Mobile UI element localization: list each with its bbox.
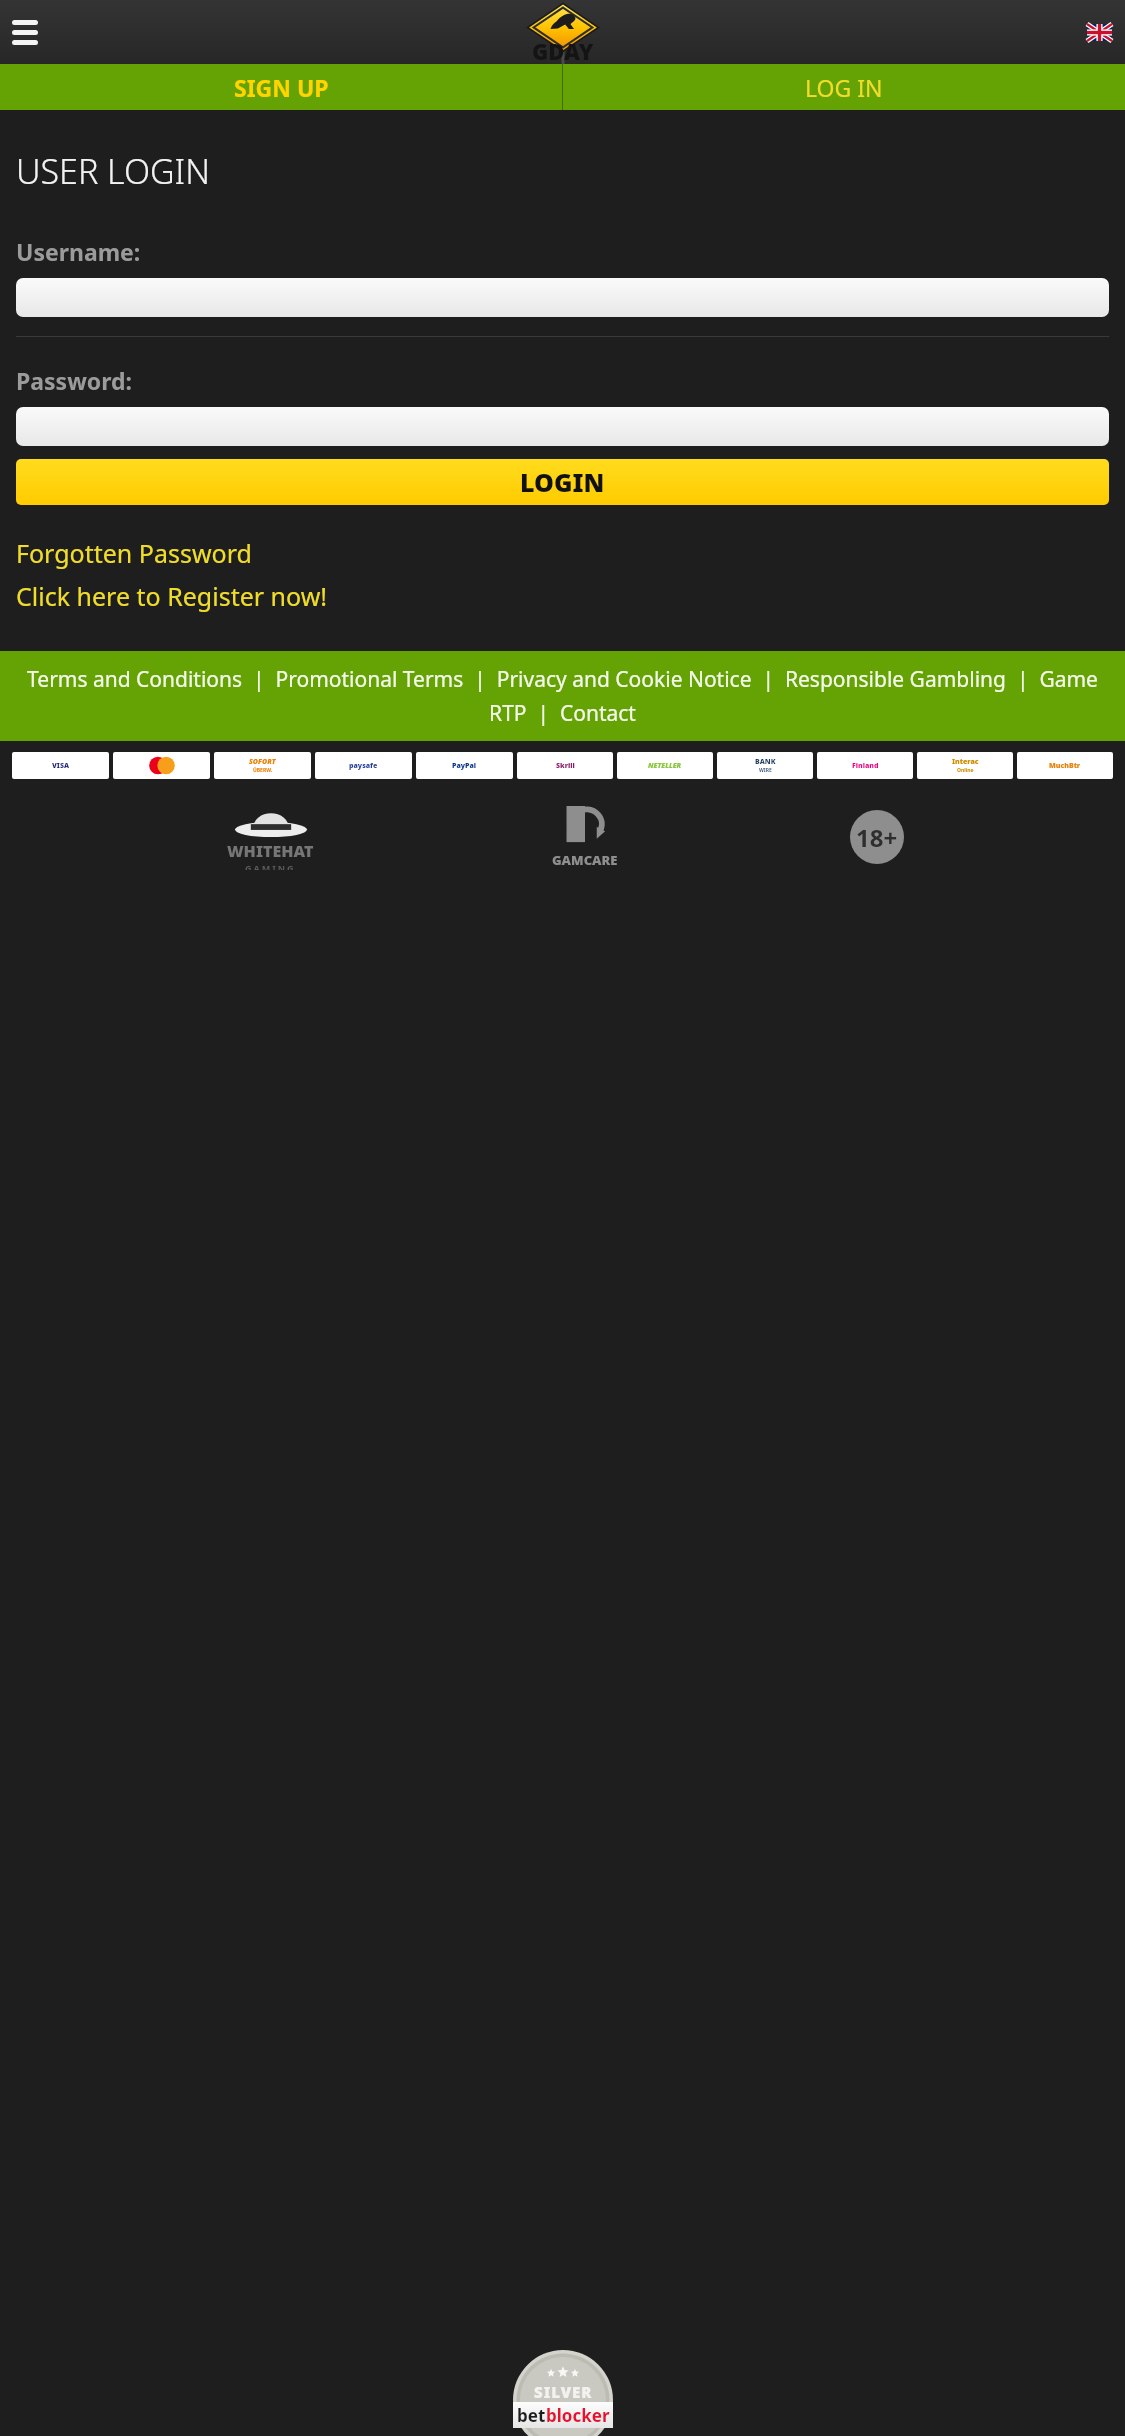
staticText: GDAY	[532, 36, 594, 64]
button[interactable]: Text input	[16, 278, 1109, 317]
staticText: LOGIN	[520, 465, 605, 499]
staticText: paysafe	[349, 761, 378, 771]
button[interactable]: MuchBtr	[1017, 752, 1113, 779]
button[interactable]: Skrill	[517, 752, 613, 779]
button[interactable]: PayPal	[416, 752, 513, 779]
staticText: GAMING	[245, 862, 296, 870]
staticText: Interac	[952, 757, 979, 767]
staticText: SOFORT	[249, 757, 276, 767]
staticText: 18+	[856, 821, 898, 854]
button[interactable]: MC	[113, 752, 210, 779]
button[interactable]: BANK	[717, 752, 813, 779]
staticText: SIGN UP	[234, 72, 329, 103]
staticText: Click here to Register now!	[16, 579, 328, 613]
staticText: Online	[957, 767, 974, 774]
staticText: SILVER	[534, 2382, 593, 2402]
button[interactable]: Forgotten Password	[16, 536, 252, 570]
button[interactable]: Interac	[917, 752, 1013, 779]
button[interactable]: Text input	[16, 407, 1109, 446]
staticText: ÜBERW.	[253, 767, 273, 774]
button[interactable]: paysafe	[315, 752, 412, 779]
button[interactable]: White Hat Gaming	[215, 804, 325, 870]
button[interactable]: BetBlocker Silver Donor	[513, 2350, 613, 2436]
button[interactable]: Finland	[817, 752, 913, 779]
staticText: BANK	[755, 757, 776, 767]
staticText: NETELLER	[648, 761, 682, 771]
staticText: bet	[517, 2404, 546, 2427]
button[interactable]: VISA	[12, 752, 109, 779]
button[interactable]: Language English	[1087, 24, 1112, 41]
staticText: Password:	[16, 365, 133, 396]
staticText: WIRE	[759, 767, 772, 774]
staticText: PayPal	[452, 761, 477, 771]
staticText: USER LOGIN	[16, 148, 210, 194]
staticText: GAMCARE	[552, 851, 618, 869]
staticText: VISA	[52, 761, 70, 771]
button[interactable]: LOG IN	[563, 64, 1125, 110]
button[interactable]: Terms and Conditions | Promotional Terms…	[8, 665, 1117, 727]
staticText: MuchBtr	[1049, 761, 1081, 771]
staticText: Username:	[16, 236, 141, 267]
staticText: blocker	[546, 2404, 610, 2427]
button[interactable]: GDay Casino	[523, 2, 603, 64]
staticText: Skrill	[556, 761, 575, 771]
button[interactable]: 18 plus only	[844, 804, 910, 870]
button[interactable]: Click here to Register now!	[16, 579, 328, 613]
button[interactable]: SIGN UP	[0, 64, 562, 110]
button[interactable]: GamCare	[540, 804, 630, 870]
button[interactable]: LOGIN	[16, 459, 1109, 505]
button[interactable]: SOFORT	[214, 752, 311, 779]
staticText: LOG IN	[805, 72, 883, 103]
staticText: Terms and Conditions | Promotional Terms…	[8, 665, 1117, 727]
button[interactable]: Open menu	[8, 15, 42, 49]
staticText: Forgotten Password	[16, 536, 252, 570]
staticText: Finland	[852, 761, 879, 771]
button[interactable]: NETELLER	[617, 752, 713, 779]
staticText: WHITEHAT	[227, 840, 314, 862]
